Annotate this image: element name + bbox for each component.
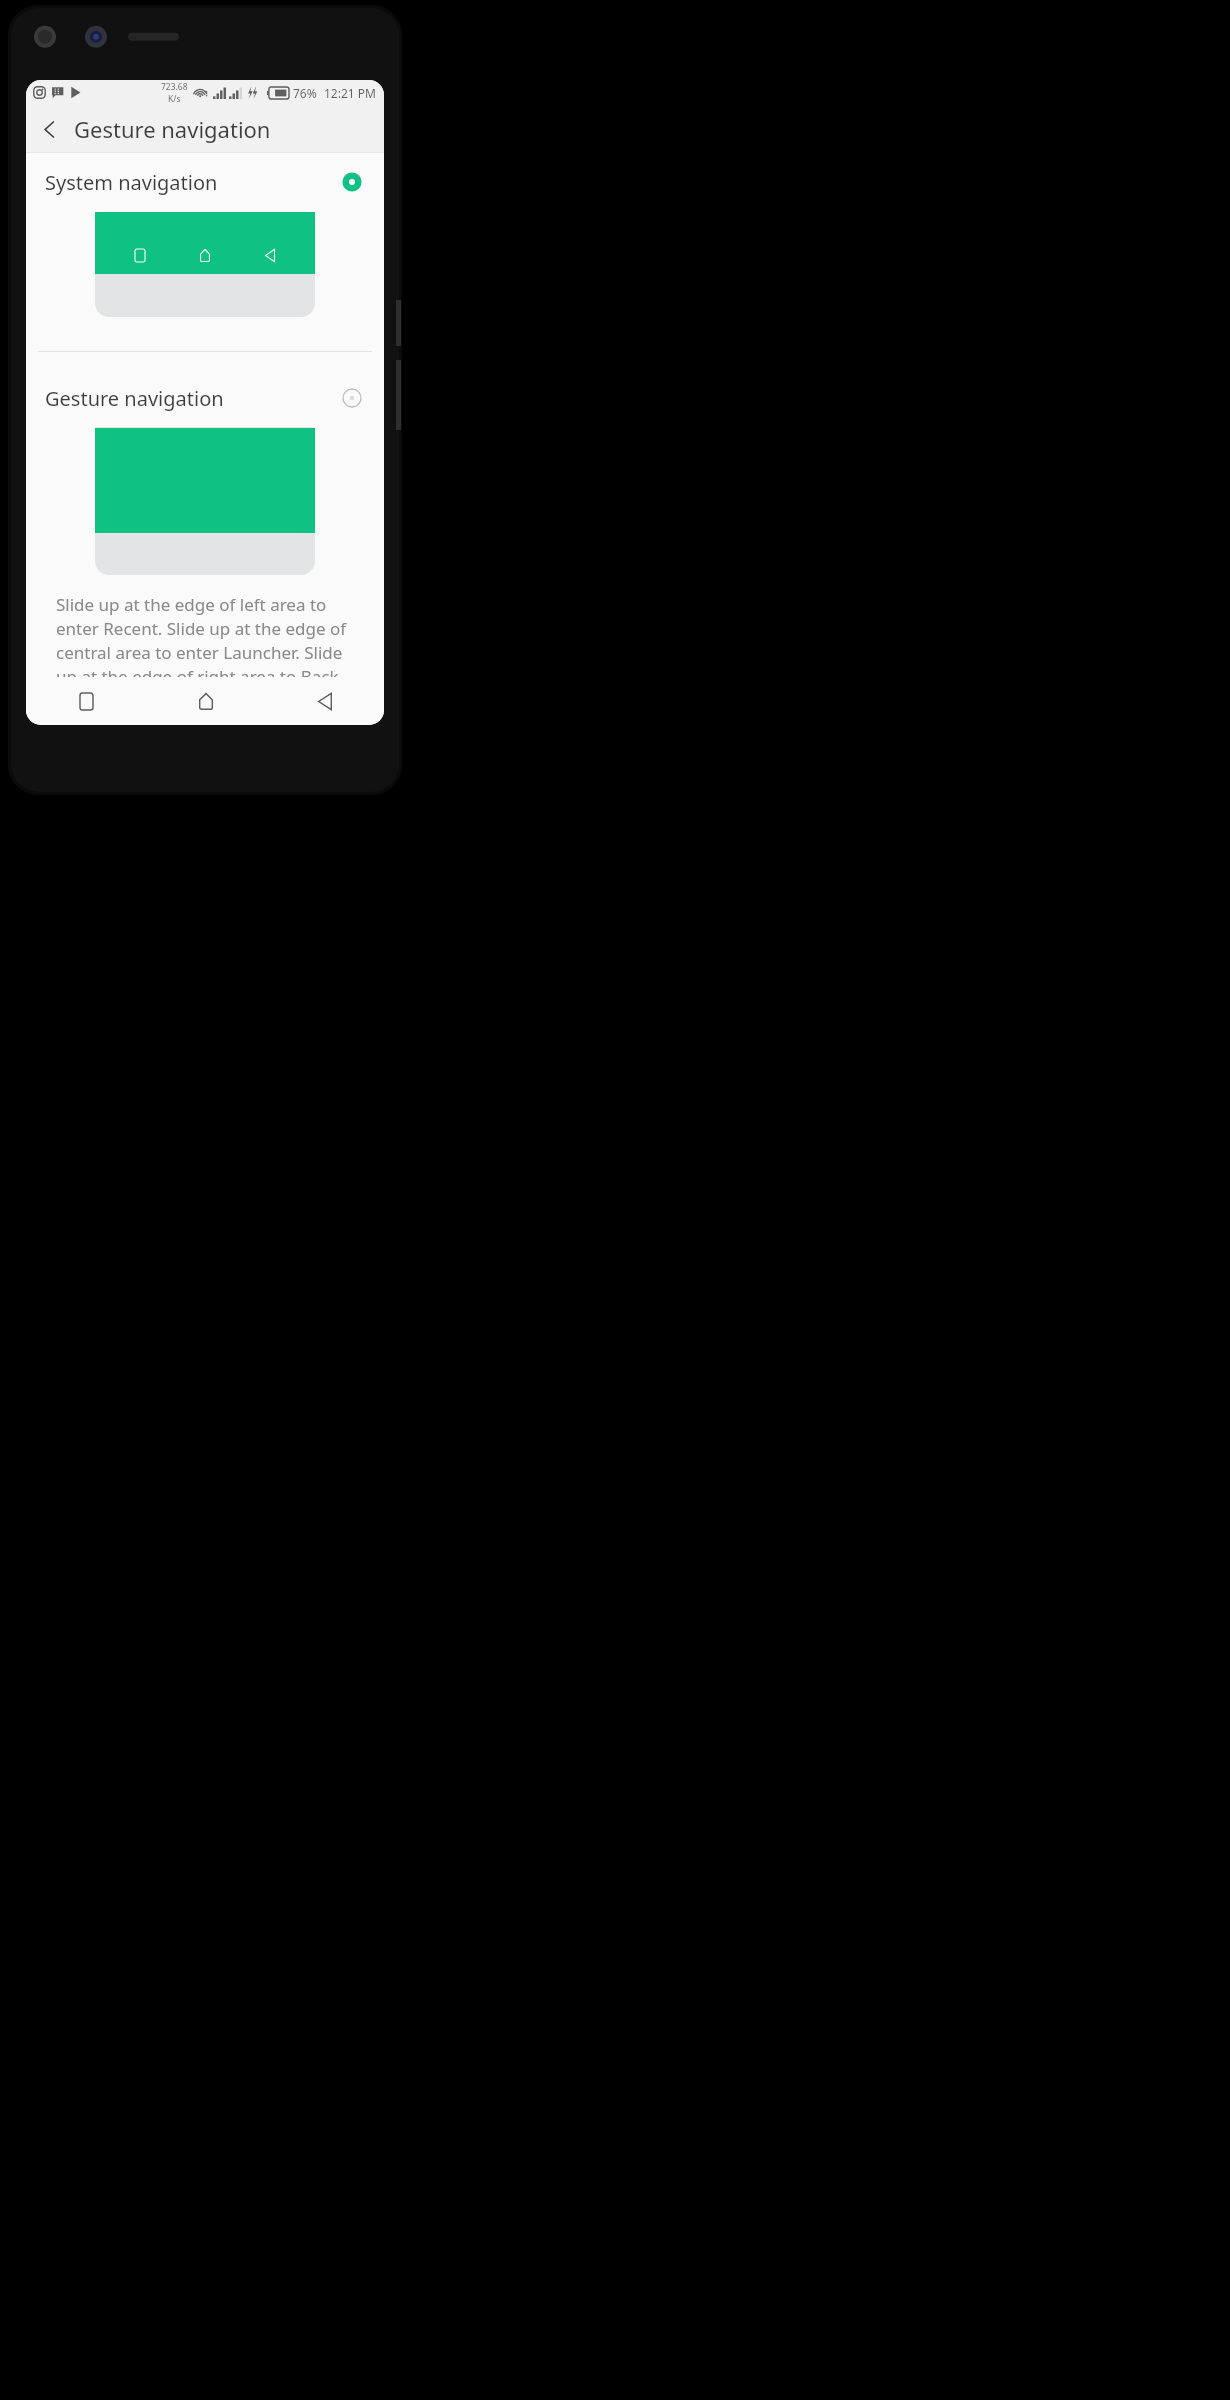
staticText: System navigation <box>45 169 218 196</box>
button[interactable]: Back <box>265 677 384 725</box>
staticText: Gesture navigation <box>74 114 271 144</box>
staticText: Slide up at the edge of left area to ent… <box>56 593 354 677</box>
button[interactable]: Back <box>26 105 74 153</box>
button[interactable]: Home <box>146 677 265 725</box>
staticText: 723.68 <box>161 81 188 93</box>
staticText: K/s <box>168 93 181 105</box>
button[interactable]: System navigation <box>26 153 384 211</box>
staticText: 76% <box>293 85 317 101</box>
staticText: 12:21 PM <box>324 85 376 101</box>
staticText: Gesture navigation <box>45 385 224 412</box>
button[interactable]: Recent apps <box>26 677 146 725</box>
button[interactable]: Gesture navigation <box>26 369 384 427</box>
